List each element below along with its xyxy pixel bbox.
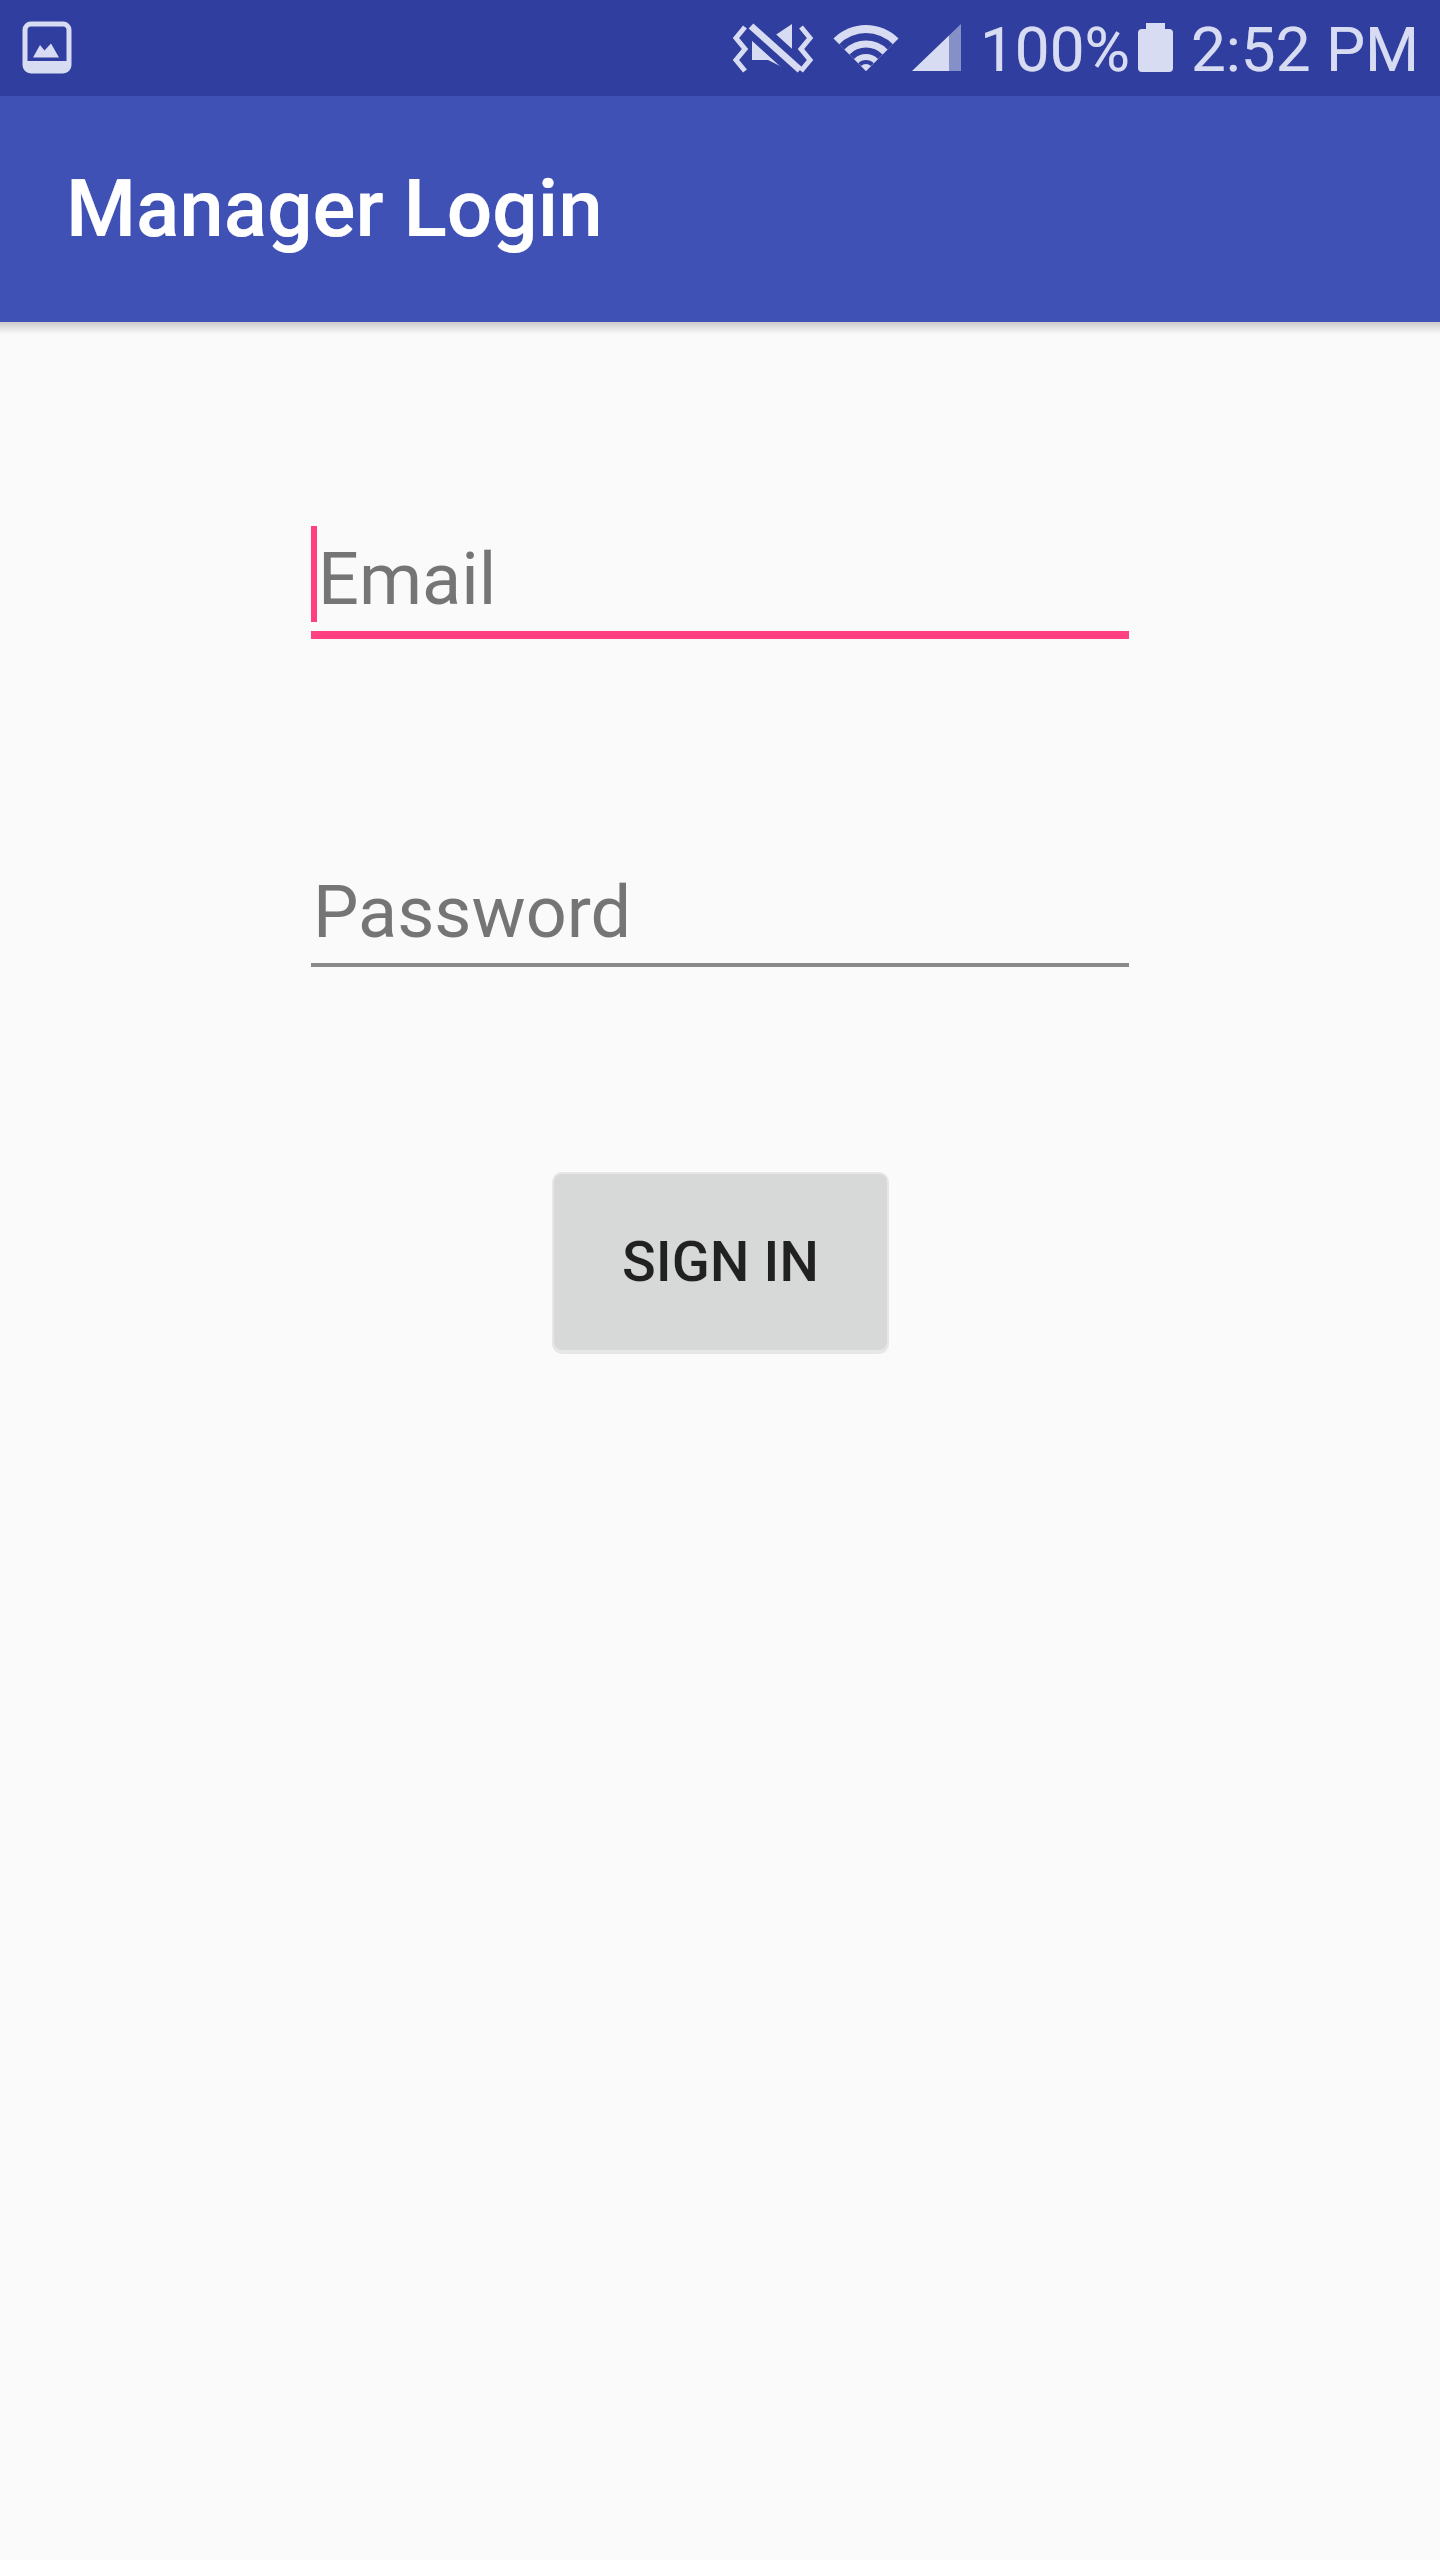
staticText: Manager Login [66, 162, 603, 256]
button[interactable]: SIGN IN [554, 1174, 887, 1350]
staticText: Password [313, 870, 632, 954]
staticText: SIGN IN [622, 1229, 820, 1295]
button[interactable]: Email [311, 500, 1129, 639]
staticText: Email [318, 537, 497, 621]
staticText: 100% [980, 13, 1130, 86]
staticText: 2:52 PM [1191, 13, 1420, 86]
button[interactable]: Password [311, 833, 1129, 963]
